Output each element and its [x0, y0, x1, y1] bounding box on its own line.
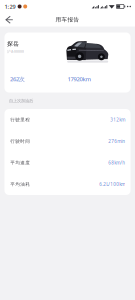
staticText: 自上次加油后 [9, 98, 33, 103]
staticText: 17920km [67, 75, 91, 83]
staticText: 沪A·88888 [7, 49, 24, 54]
button[interactable]: 平均油耗 [4, 173, 130, 195]
staticText: 276min [108, 138, 125, 144]
staticText: 262次 [10, 75, 25, 83]
staticText: 用车报告 [55, 16, 79, 23]
staticText: 312km [110, 117, 125, 123]
staticText: 行驶里程 [10, 117, 30, 123]
staticText: 平均油耗 [10, 181, 30, 187]
staticText: 探岳 [7, 40, 19, 47]
button[interactable]: 行驶时间 [4, 130, 130, 152]
button[interactable]: Back [2, 13, 15, 26]
staticText: 行驶时间 [10, 138, 30, 144]
staticText: 1:29 [5, 3, 16, 10]
button[interactable]: 平均速度 [4, 152, 130, 173]
staticText: 平均速度 [10, 160, 30, 166]
staticText: 6.2L/100km [99, 181, 125, 187]
staticText: 68km/h [108, 160, 125, 166]
button[interactable]: 行驶里程 [4, 109, 130, 130]
